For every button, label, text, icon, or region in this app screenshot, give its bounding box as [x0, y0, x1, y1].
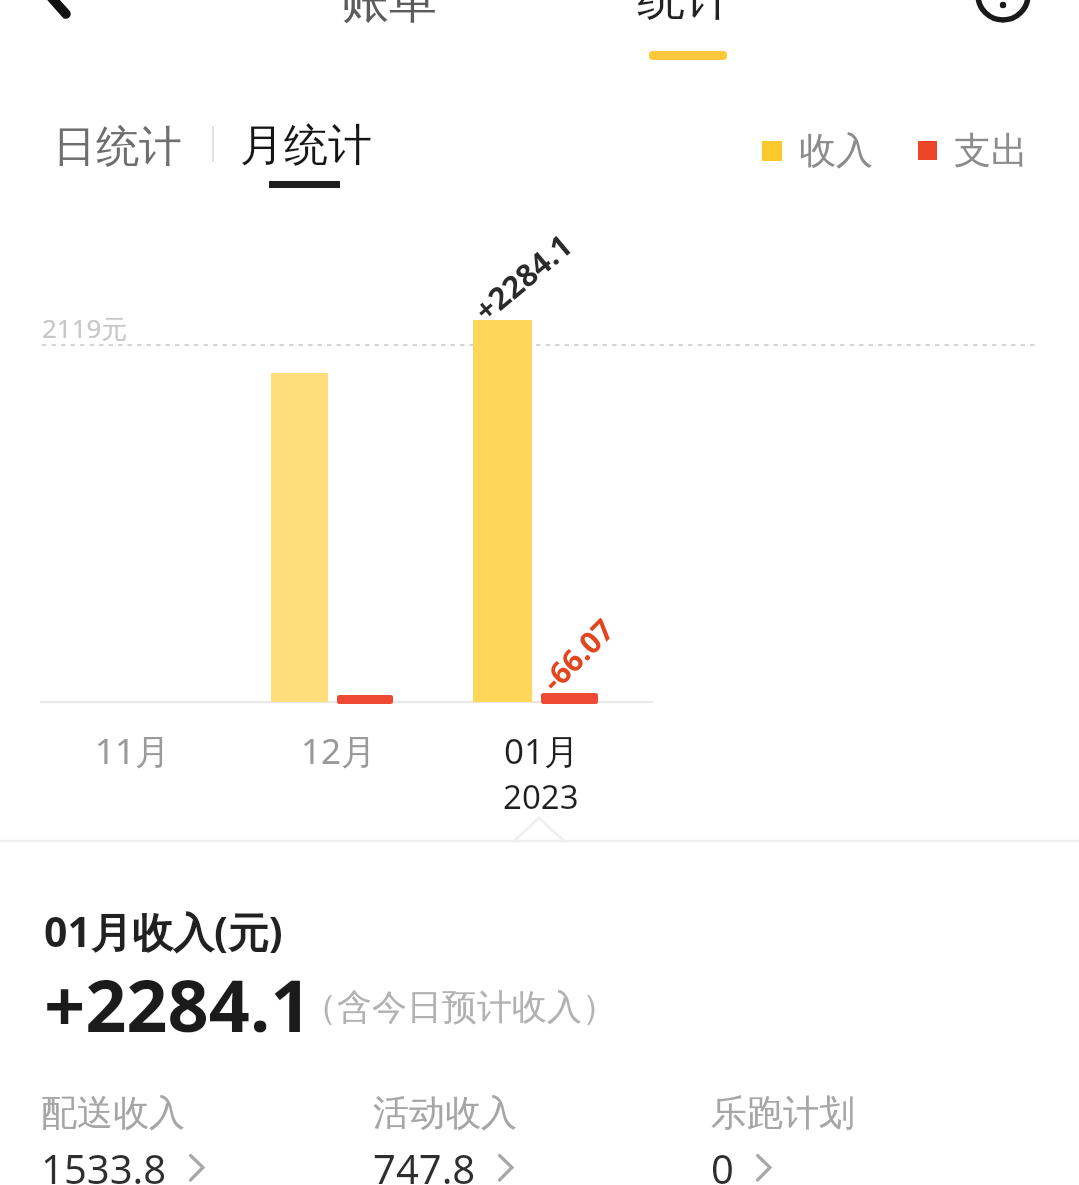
button[interactable]: 配送收入: [41, 1090, 373, 1185]
button[interactable]: Back: [8, 0, 88, 24]
staticText: 2023: [503, 774, 579, 819]
staticText: （含今日预计收入）: [302, 985, 617, 1029]
staticText: +2284.1: [465, 224, 581, 330]
staticText: 账单: [341, 0, 437, 31]
staticText: 配送收入: [41, 1090, 185, 1135]
staticText: -66.07: [532, 609, 623, 700]
staticText: 747.8: [373, 1141, 476, 1185]
staticText: 日统计: [53, 120, 182, 174]
button[interactable]: 12月: [301, 727, 377, 775]
staticText: 1533.8: [41, 1141, 167, 1185]
staticText: 0: [711, 1141, 734, 1185]
button[interactable]: 乐跑计划: [711, 1090, 951, 1185]
staticText: 收入: [799, 127, 873, 174]
staticText: 01月: [504, 727, 580, 775]
staticText: 01月收入(元): [44, 903, 283, 959]
button[interactable]: 01月: [504, 727, 580, 775]
button[interactable]: More options: [967, 0, 1039, 31]
staticText: 统计: [637, 0, 733, 28]
button[interactable]: 11月: [95, 727, 171, 775]
staticText: 支出: [954, 127, 1028, 174]
button[interactable]: 活动收入: [373, 1090, 711, 1185]
staticText: 乐跑计划: [711, 1090, 855, 1135]
button[interactable]: 日统计: [37, 112, 198, 182]
staticText: 活动收入: [373, 1090, 517, 1135]
staticText: 11月: [95, 727, 171, 775]
staticText: 月统计: [240, 118, 372, 173]
button[interactable]: 月统计: [224, 110, 388, 181]
button[interactable]: 账单: [341, 0, 437, 31]
staticText: +2284.1: [44, 955, 312, 1053]
staticText: 12月: [301, 727, 377, 775]
button[interactable]: 统计: [637, 0, 733, 28]
staticText: 2119元: [42, 310, 128, 346]
